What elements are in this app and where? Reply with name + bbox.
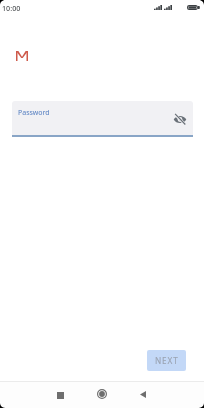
button[interactable]: Recents (49, 384, 71, 406)
staticText: NEXT (155, 355, 179, 366)
button[interactable]: Home (91, 383, 113, 405)
button[interactable]: Password (12, 101, 193, 135)
staticText: 10:00 (2, 3, 21, 13)
button[interactable]: Back (132, 383, 154, 405)
button[interactable]: NEXT (147, 350, 186, 371)
button[interactable]: Show password (172, 110, 188, 126)
staticText: Password (18, 108, 50, 118)
